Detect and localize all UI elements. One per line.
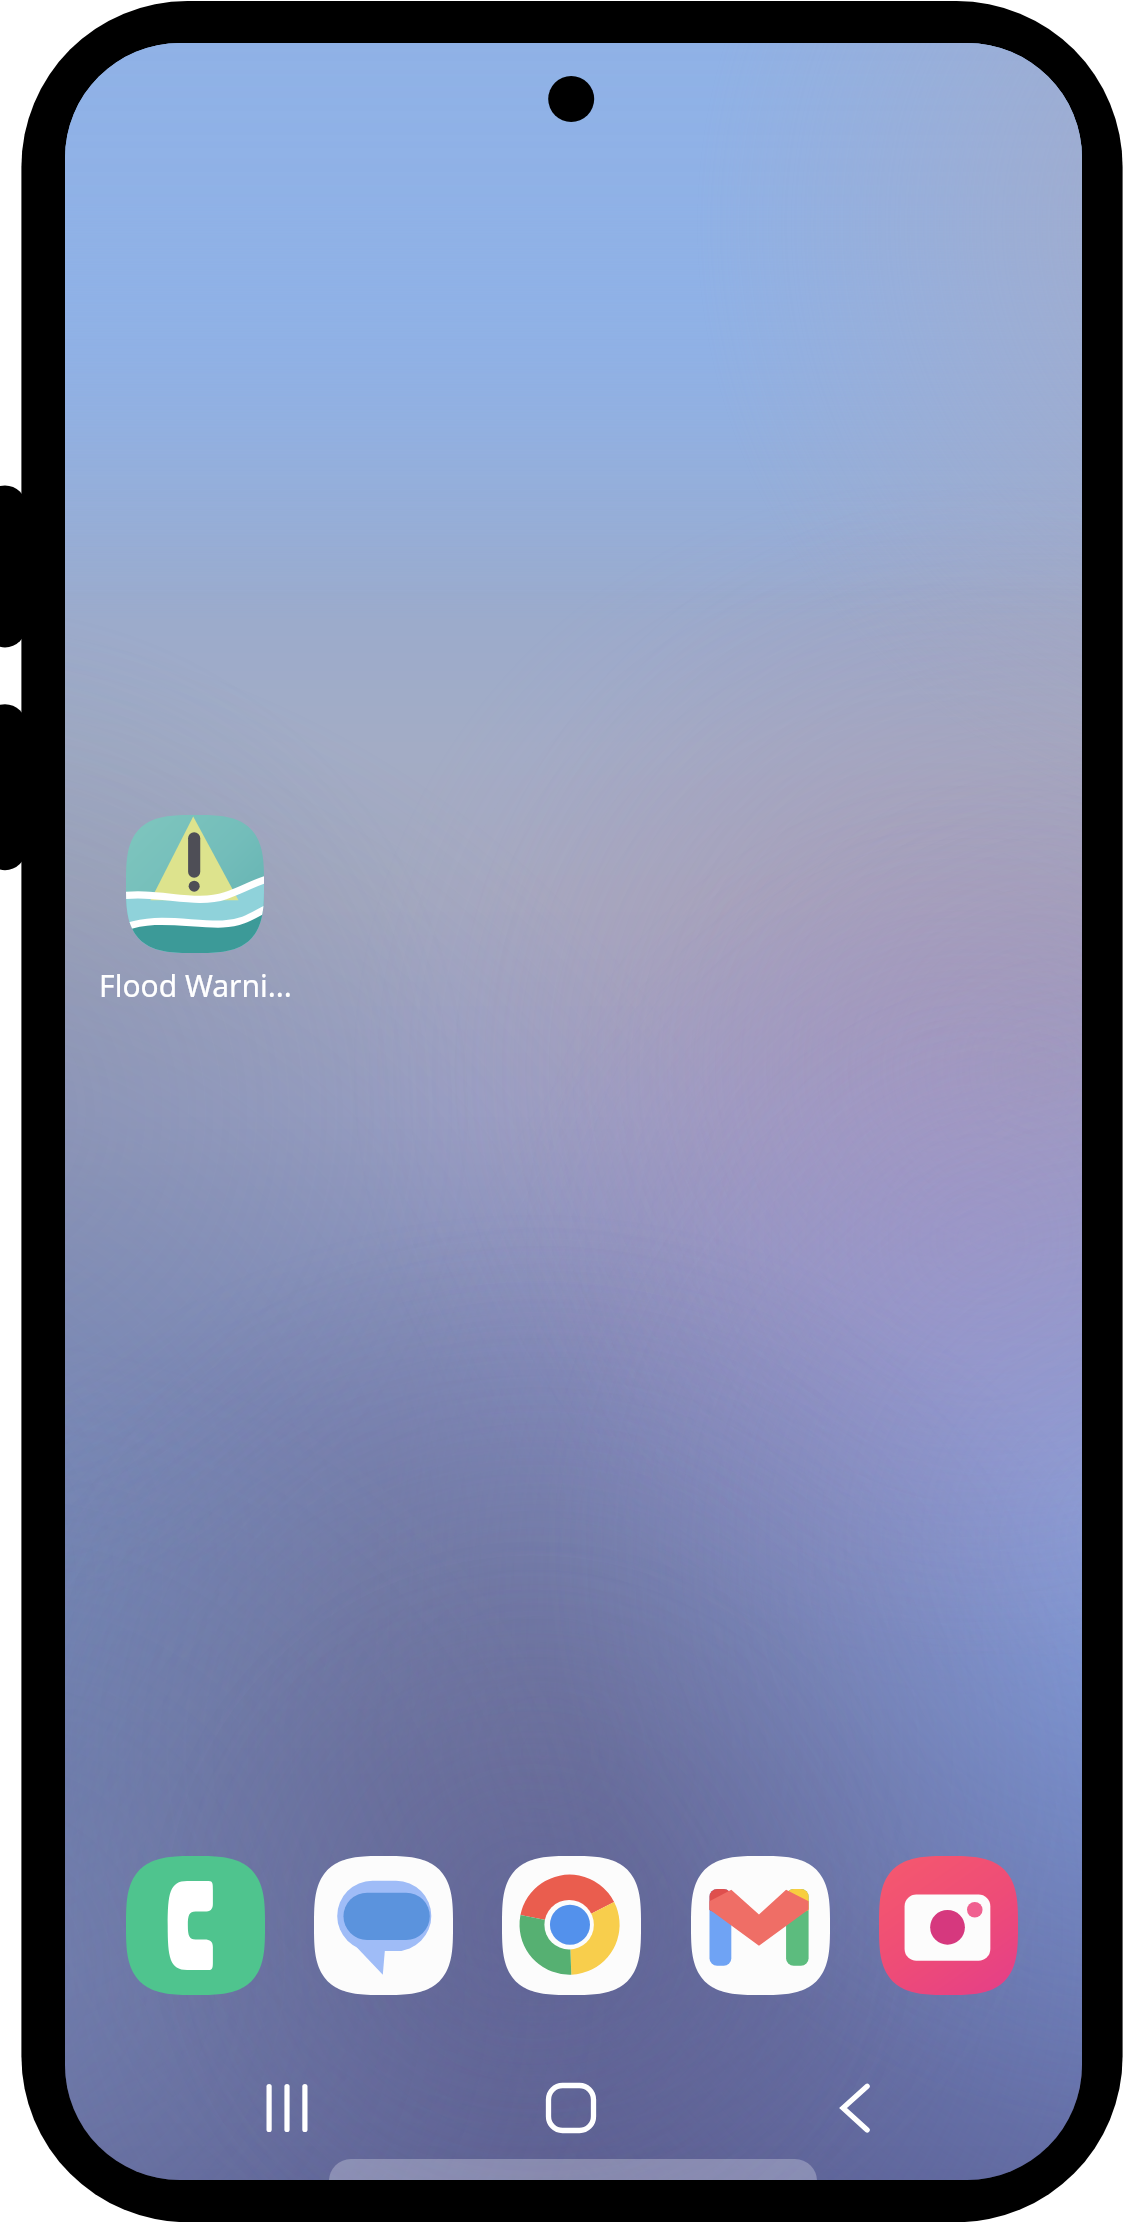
button[interactable]: Flood Warni... xyxy=(65,815,325,1006)
button[interactable]: Back xyxy=(805,2058,905,2158)
button[interactable]: Phone xyxy=(126,1856,265,1995)
staticText: Flood Warni... xyxy=(99,965,292,1006)
button[interactable]: Messages xyxy=(314,1856,453,1995)
button[interactable]: Home xyxy=(521,2058,621,2158)
button[interactable]: Gmail xyxy=(691,1856,830,1995)
button[interactable]: Chrome xyxy=(502,1856,641,1995)
button[interactable]: Recent apps xyxy=(237,2058,337,2158)
button[interactable]: Camera xyxy=(879,1856,1018,1995)
